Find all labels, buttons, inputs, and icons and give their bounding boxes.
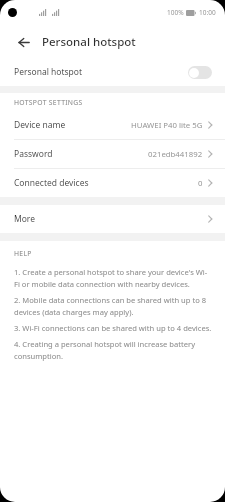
staticText: 021edb441892 — [148, 149, 203, 160]
staticText: Device name — [14, 119, 66, 131]
button[interactable]: Back — [13, 32, 33, 52]
staticText: Personal hotspot — [42, 34, 136, 50]
staticText: 10:00 — [199, 8, 216, 17]
staticText: Password — [14, 148, 53, 160]
staticText: 3. Wi-Fi connections can be shared with … — [14, 323, 212, 333]
staticText: 2. Mobile data connections can be shared… — [14, 295, 212, 317]
staticText: Personal hotspot — [14, 66, 83, 78]
staticText: More — [14, 213, 35, 225]
button[interactable]: Personal hotspot — [0, 58, 225, 86]
button[interactable]: Device name — [0, 111, 225, 140]
staticText: HUAWEI P40 lite 5G — [131, 120, 203, 131]
staticText: HOTSPOT SETTINGS — [14, 98, 83, 107]
staticText: 4. Creating a personal hotspot will incr… — [14, 339, 212, 361]
button[interactable]: Password — [0, 140, 225, 169]
staticText: Connected devices — [14, 177, 89, 189]
staticText: HELP — [14, 249, 32, 258]
staticText: 100% — [167, 8, 184, 17]
staticText: 1. Create a personal hotspot to share yo… — [14, 267, 212, 289]
staticText: 0 — [198, 178, 203, 189]
button[interactable]: More — [0, 205, 225, 233]
button[interactable]: Connected devices — [0, 169, 225, 197]
